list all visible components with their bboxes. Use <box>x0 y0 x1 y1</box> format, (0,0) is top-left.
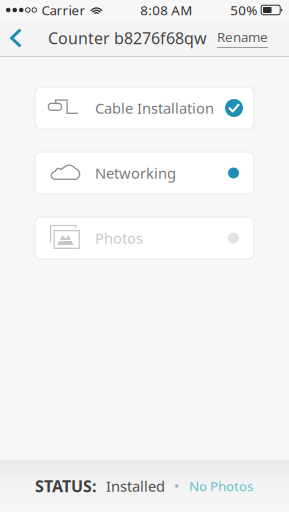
button[interactable]: Photos <box>35 217 254 259</box>
button[interactable]: No Photos <box>180 477 253 495</box>
staticText: Counter b8276f68qw <box>48 27 207 49</box>
button[interactable]: Rename <box>217 20 289 56</box>
staticText: Cable Installation <box>95 98 214 118</box>
button[interactable]: Networking <box>35 152 254 194</box>
staticText: Installed <box>106 476 165 496</box>
staticText: Carrier <box>41 1 85 19</box>
staticText: 8:08 AM <box>140 1 192 19</box>
staticText: Photos <box>95 228 143 248</box>
button[interactable]: Cable Installation <box>35 87 254 129</box>
staticText: • <box>174 476 180 496</box>
staticText: STATUS: <box>35 475 96 497</box>
staticText: Networking <box>95 163 176 183</box>
staticText: 50% <box>230 1 257 19</box>
staticText: No Photos <box>189 477 253 495</box>
button[interactable]: Back <box>0 20 34 56</box>
staticText: Rename <box>217 28 268 46</box>
